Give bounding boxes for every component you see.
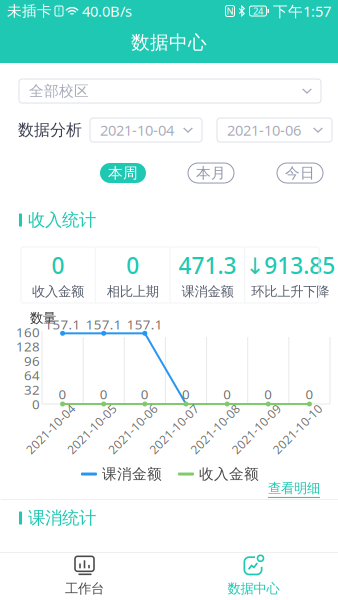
staticText: 0 — [223, 385, 231, 403]
staticText: 收入金额 — [199, 465, 259, 483]
staticText: 2021-10-06 — [227, 120, 301, 140]
staticText: 160 — [16, 323, 40, 341]
staticText: 数量 — [30, 310, 56, 326]
staticText: 157.1 — [45, 315, 81, 333]
staticText: 本周 — [108, 164, 138, 182]
staticText: 2021-10-04 — [100, 120, 174, 140]
staticText: 收入统计 — [28, 209, 96, 231]
staticText: 全部校区 — [29, 82, 89, 100]
button[interactable]: 数据中心 — [169, 553, 338, 600]
button[interactable]: 2021-10-06 — [217, 118, 332, 142]
staticText: 0 — [100, 385, 108, 403]
staticText: 2021-10-09 — [224, 421, 288, 437]
staticText: 0 — [126, 250, 139, 280]
staticText: 工作台 — [65, 580, 104, 597]
staticText: 0 — [264, 385, 272, 403]
button[interactable]: 本月 — [188, 163, 234, 183]
staticText: 本月 — [196, 164, 226, 182]
staticText: 课消统计 — [28, 507, 96, 529]
button[interactable]: 工作台 — [0, 553, 169, 600]
staticText: 环比上升下降 — [251, 283, 329, 300]
staticText: 471.3 — [178, 250, 236, 280]
staticText: 157.1 — [127, 315, 163, 333]
staticText: 2021-10-08 — [183, 421, 247, 437]
staticText: ! — [57, 5, 60, 17]
staticText: 0 — [305, 385, 313, 403]
button[interactable]: 2021-10-04 — [90, 118, 202, 142]
staticText: 2021-10-07 — [142, 421, 206, 437]
staticText: 数据中心 — [227, 580, 279, 597]
staticText: 数据中心 — [131, 31, 207, 54]
button[interactable]: 本周 — [100, 163, 146, 183]
staticText: 128 — [16, 337, 40, 355]
staticText: 96 — [24, 352, 40, 370]
staticText: 0 — [182, 385, 190, 403]
staticText: 24 — [253, 5, 263, 17]
staticText: 未插卡 — [7, 2, 52, 20]
button[interactable]: 今日 — [277, 163, 323, 183]
staticText: ↓913.85 — [245, 250, 335, 280]
staticText: 课消金额 — [181, 283, 233, 300]
staticText: 课消金额 — [102, 465, 162, 483]
staticText: 今日 — [285, 164, 315, 182]
staticText: 2021-10-10 — [265, 421, 329, 437]
button[interactable]: 查看明细 — [268, 480, 320, 498]
staticText: 查看明细 — [268, 480, 320, 496]
staticText: N — [226, 5, 233, 17]
staticText: 下午1:57 — [273, 1, 331, 21]
staticText: 0 — [59, 385, 67, 403]
staticText: 157.1 — [86, 315, 122, 333]
staticText: 0 — [32, 395, 40, 413]
staticText: 相比上期 — [107, 283, 159, 300]
staticText: 收入金额 — [32, 283, 84, 300]
staticText: 40.0B/s — [82, 1, 132, 21]
staticText: 数据分析 — [18, 120, 82, 140]
staticText: 2021-10-04 — [19, 421, 83, 437]
staticText: 32 — [24, 381, 40, 398]
staticText: 2021-10-06 — [101, 421, 165, 437]
staticText: 2021-10-05 — [60, 421, 124, 437]
staticText: 0 — [51, 250, 64, 280]
staticText: 0 — [141, 385, 149, 403]
button[interactable]: 全部校区 — [19, 79, 321, 103]
staticText: 64 — [24, 366, 40, 384]
